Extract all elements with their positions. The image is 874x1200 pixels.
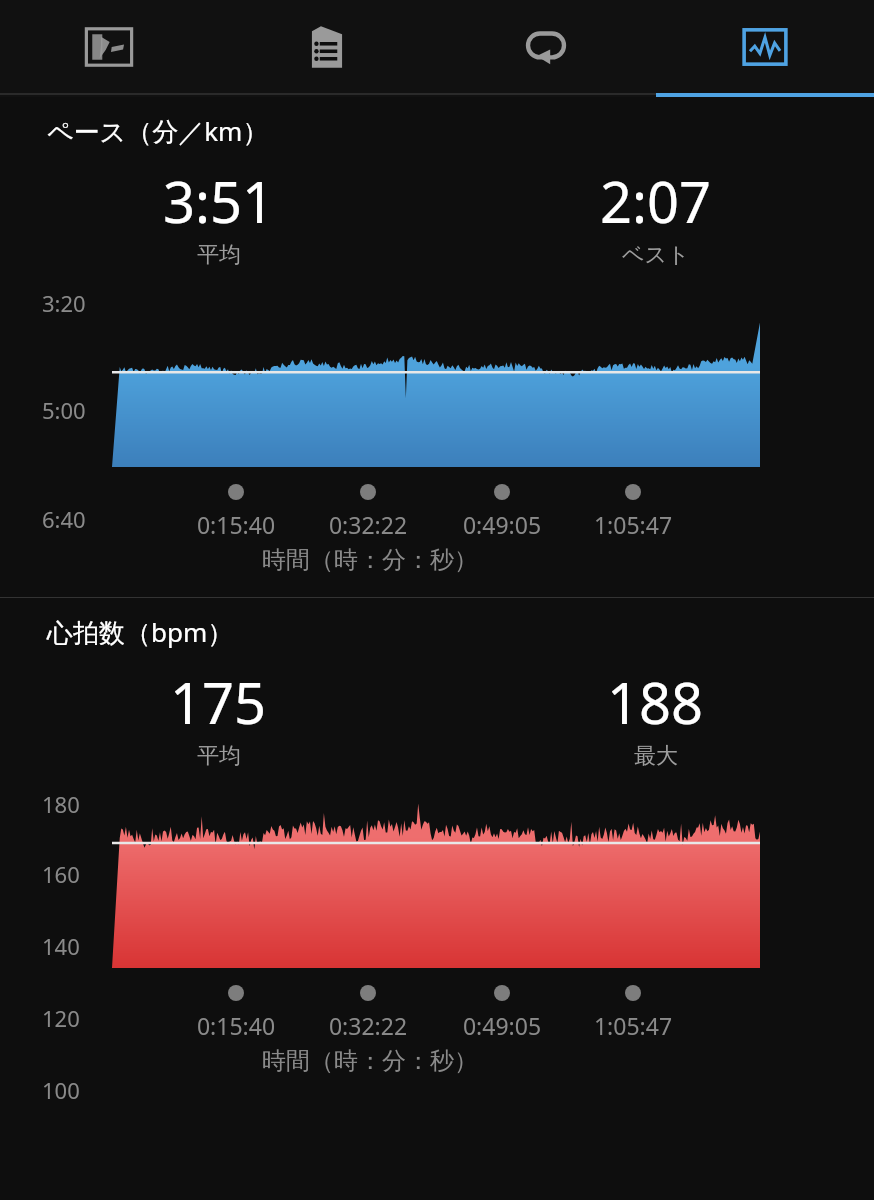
staticText: 120 — [42, 1003, 80, 1033]
staticText: 時間（時：分：秒） — [2, 1046, 738, 1076]
staticText: 1:05:47 — [553, 1010, 713, 1040]
staticText: 0:49:05 — [422, 509, 582, 539]
staticText: 0:15:40 — [156, 1010, 316, 1040]
staticText: 平均 — [197, 241, 241, 269]
button[interactable]: Map — [0, 0, 218, 93]
staticText: 1:05:47 — [553, 509, 713, 539]
staticText: 3:20 — [42, 288, 86, 318]
staticText: 時間（時：分：秒） — [2, 545, 738, 575]
staticText: 180 — [42, 789, 80, 819]
staticText: 0:32:22 — [288, 509, 448, 539]
staticText: 0:32:22 — [288, 1010, 448, 1040]
button[interactable]: 3:51 — [0, 163, 437, 269]
staticText: 0:49:05 — [422, 1010, 582, 1040]
staticText: 最大 — [634, 742, 678, 770]
staticText: 平均 — [197, 742, 241, 770]
button[interactable]: 188 — [437, 664, 874, 770]
staticText: 3:51 — [163, 163, 275, 239]
staticText: 175 — [170, 664, 267, 740]
staticText: 0:15:40 — [156, 509, 316, 539]
button[interactable]: Details — [218, 0, 436, 93]
staticText: 188 — [607, 664, 704, 740]
button[interactable]: 175 — [0, 664, 437, 770]
staticText: ペース（分／km） — [47, 113, 269, 149]
staticText: 5:00 — [42, 395, 86, 425]
button[interactable]: 2:07 — [437, 163, 874, 269]
staticText: 6:40 — [42, 504, 86, 534]
button[interactable]: Charts — [655, 0, 874, 93]
staticText: 140 — [42, 931, 80, 961]
button[interactable]: Laps — [436, 0, 655, 93]
staticText: 2:07 — [600, 163, 712, 239]
staticText: 心拍数（bpm） — [47, 614, 234, 650]
staticText: ベスト — [622, 241, 690, 269]
staticText: 160 — [42, 859, 80, 889]
staticText: 100 — [42, 1075, 80, 1105]
